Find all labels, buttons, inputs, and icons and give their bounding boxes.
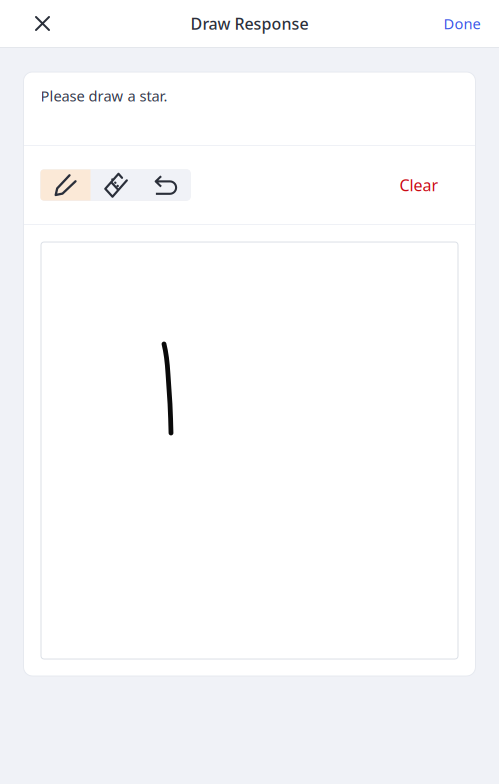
staticText: Please draw a star. xyxy=(40,86,167,105)
staticText: Done xyxy=(443,14,480,33)
button[interactable]: Close xyxy=(21,0,64,46)
staticText: Draw Response xyxy=(190,13,308,34)
button[interactable]: Undo xyxy=(140,169,190,200)
button[interactable]: Eraser xyxy=(90,169,140,200)
button[interactable]: Pen xyxy=(40,169,90,200)
staticText: Clear xyxy=(399,174,438,196)
button[interactable]: Clear xyxy=(389,169,448,200)
button[interactable]: Done xyxy=(434,0,490,46)
